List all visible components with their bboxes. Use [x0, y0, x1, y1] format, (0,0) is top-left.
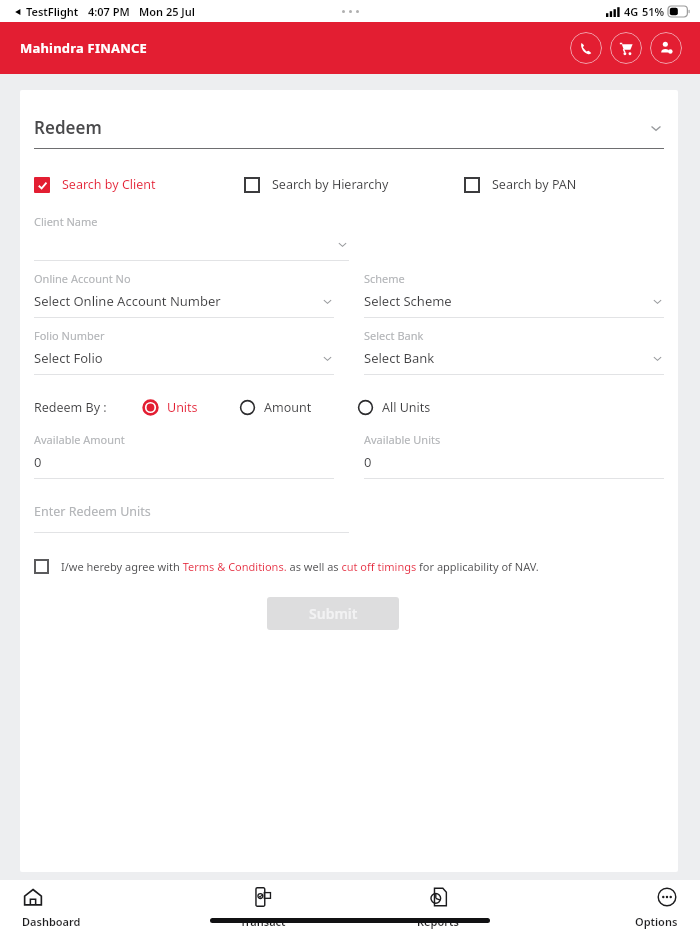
- staticText: Redeem By :: [34, 399, 107, 416]
- staticText: Online Account No: [34, 271, 131, 286]
- staticText: Select Bank: [364, 349, 651, 367]
- staticText: Search by PAN: [492, 176, 577, 193]
- staticText: Available Units: [364, 432, 441, 447]
- staticText: Dashboard: [22, 914, 81, 929]
- button[interactable]: I/we hereby agree with Terms & Condition…: [34, 559, 664, 574]
- button[interactable]: Units: [143, 399, 198, 416]
- button[interactable]: Select Bank: [364, 328, 664, 375]
- staticText: Select Online Account Number: [34, 292, 321, 310]
- button[interactable]: Enter Redeem Units: [34, 503, 349, 533]
- button[interactable]: Redeem: [34, 116, 664, 139]
- staticText: Scheme: [364, 271, 405, 286]
- button[interactable]: Available Amount: [34, 432, 334, 479]
- button[interactable]: Client Name: [34, 214, 349, 261]
- button[interactable]: Transact: [175, 880, 350, 934]
- staticText: Amount: [264, 399, 312, 416]
- staticText: 4:07 PM: [88, 4, 130, 19]
- button[interactable]: Submit: [267, 597, 399, 630]
- staticText: TestFlight: [26, 4, 79, 19]
- button[interactable]: Search by Hierarchy: [244, 176, 464, 193]
- button[interactable]: Amount: [240, 399, 312, 416]
- staticText: Options: [635, 914, 678, 929]
- staticText: 0: [34, 453, 334, 471]
- button[interactable]: Folio Number: [34, 328, 334, 375]
- button[interactable]: Profile: [650, 32, 682, 64]
- button[interactable]: Search by PAN: [464, 176, 664, 193]
- staticText: Transact: [240, 914, 286, 929]
- staticText: Enter Redeem Units: [34, 503, 151, 520]
- button[interactable]: Available Units: [364, 432, 664, 479]
- button[interactable]: Scheme: [364, 271, 664, 318]
- staticText: Available Amount: [34, 432, 125, 447]
- staticText: Select Scheme: [364, 292, 651, 310]
- button[interactable]: Online Account No: [34, 271, 334, 318]
- button[interactable]: All Units: [358, 399, 431, 416]
- staticText: 4G: [624, 4, 639, 19]
- staticText: 51%: [642, 4, 665, 19]
- button[interactable]: Search by Client: [34, 176, 244, 193]
- staticText: Mon 25 Jul: [139, 4, 195, 19]
- staticText: Client Name: [34, 214, 98, 229]
- staticText: Reports: [417, 914, 459, 929]
- staticText: Folio Number: [34, 328, 105, 343]
- staticText: Units: [167, 399, 198, 416]
- staticText: I/we hereby agree with Terms & Condition…: [61, 559, 539, 574]
- staticText: Submit: [309, 604, 358, 623]
- staticText: Redeem: [34, 116, 102, 139]
- button[interactable]: Options: [525, 880, 700, 934]
- staticText: 0: [364, 453, 664, 471]
- staticText: Mahindra FINANCE: [20, 39, 147, 57]
- button[interactable]: Dashboard: [0, 880, 175, 934]
- staticText: Select Bank: [364, 328, 424, 343]
- button[interactable]: Reports: [350, 880, 525, 934]
- staticText: Search by Hierarchy: [272, 176, 389, 193]
- staticText: Select Folio: [34, 349, 321, 367]
- button[interactable]: Cart: [610, 32, 642, 64]
- button[interactable]: Call: [570, 32, 602, 64]
- staticText: Search by Client: [62, 176, 156, 193]
- staticText: All Units: [382, 399, 431, 416]
